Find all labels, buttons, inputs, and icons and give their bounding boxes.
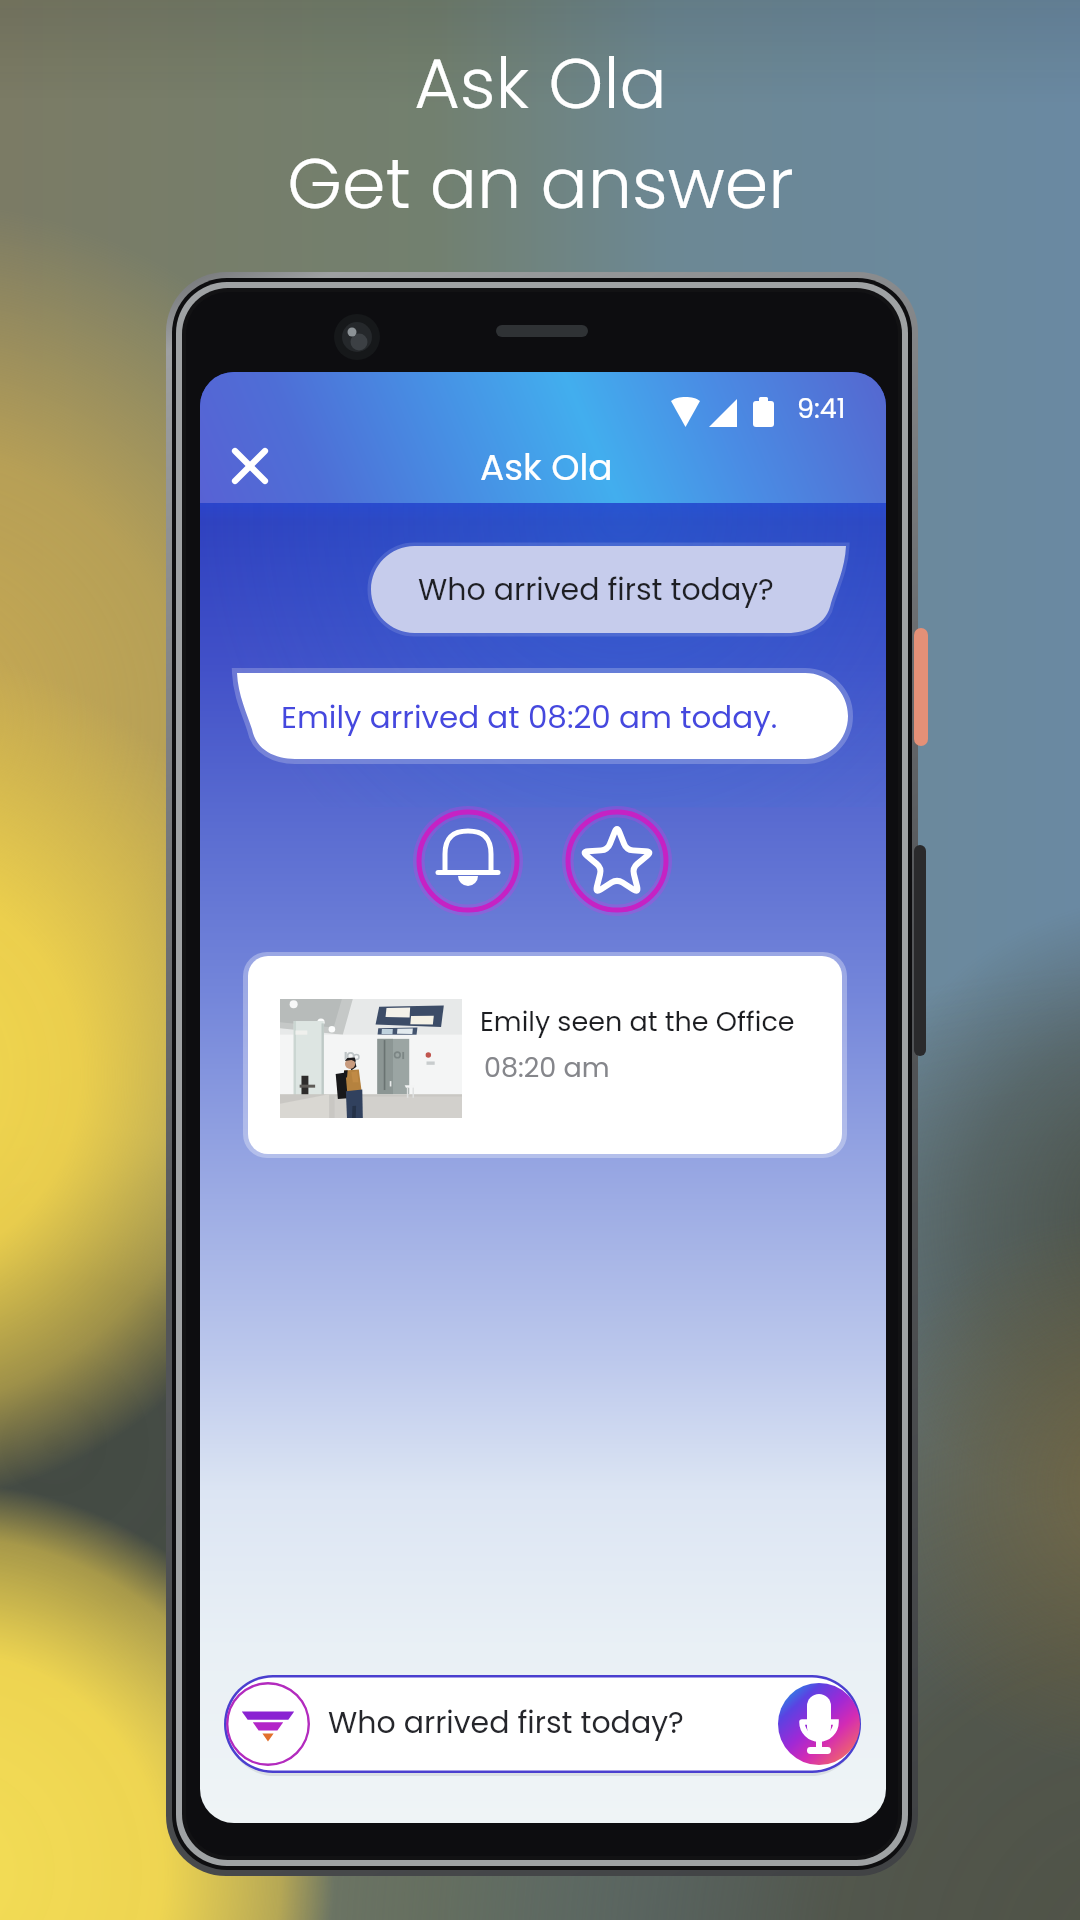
button[interactable] bbox=[224, 1675, 861, 1773]
button[interactable]: Ola assistant bbox=[226, 1682, 310, 1766]
staticText: Who arrived first today? bbox=[328, 1702, 684, 1744]
staticText: Emily seen at the Office bbox=[480, 1003, 795, 1041]
button[interactable]: Emily seen at the Office bbox=[248, 956, 842, 1154]
button[interactable]: Notify me bbox=[413, 806, 523, 916]
staticText: Who arrived first today? bbox=[418, 569, 774, 611]
button[interactable]: Who arrived first today? bbox=[371, 546, 821, 633]
button[interactable]: Emily arrived at 08:20 am today. bbox=[281, 673, 841, 759]
button[interactable]: Voice search bbox=[776, 1681, 862, 1767]
button[interactable]: Add to favorites bbox=[562, 806, 672, 916]
staticText: Ask Ola bbox=[480, 442, 613, 492]
staticText: Get an answer bbox=[287, 134, 794, 232]
staticText: Ask Ola bbox=[414, 34, 667, 132]
staticText: Emily arrived at 08:20 am today. bbox=[281, 695, 778, 738]
button[interactable]: Close bbox=[222, 438, 278, 494]
staticText: 9:41 bbox=[797, 390, 846, 428]
staticText: 08:20 am bbox=[484, 1049, 610, 1087]
